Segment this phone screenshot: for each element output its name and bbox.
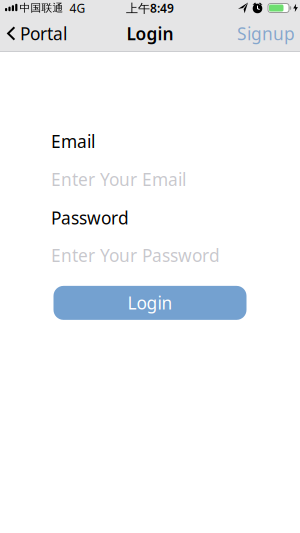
staticText: Signup (237, 22, 295, 45)
staticText: Enter Your Password (51, 244, 220, 267)
staticText: Login (127, 291, 172, 314)
button[interactable]: Email text field (51, 168, 186, 191)
staticText: Portal (20, 22, 67, 45)
button[interactable]: Login (53, 286, 246, 320)
button[interactable]: Portal (0, 22, 67, 45)
staticText: Password (51, 206, 129, 229)
staticText: Enter Your Email (51, 168, 186, 191)
staticText: 中国联通 (19, 1, 63, 14)
button[interactable]: Password text field (51, 244, 220, 267)
staticText: Email (51, 130, 95, 153)
staticText: 4G (69, 0, 85, 16)
staticText: Login (126, 22, 173, 45)
staticText: 上午8:49 (126, 0, 174, 16)
button[interactable]: Signup (237, 22, 300, 45)
